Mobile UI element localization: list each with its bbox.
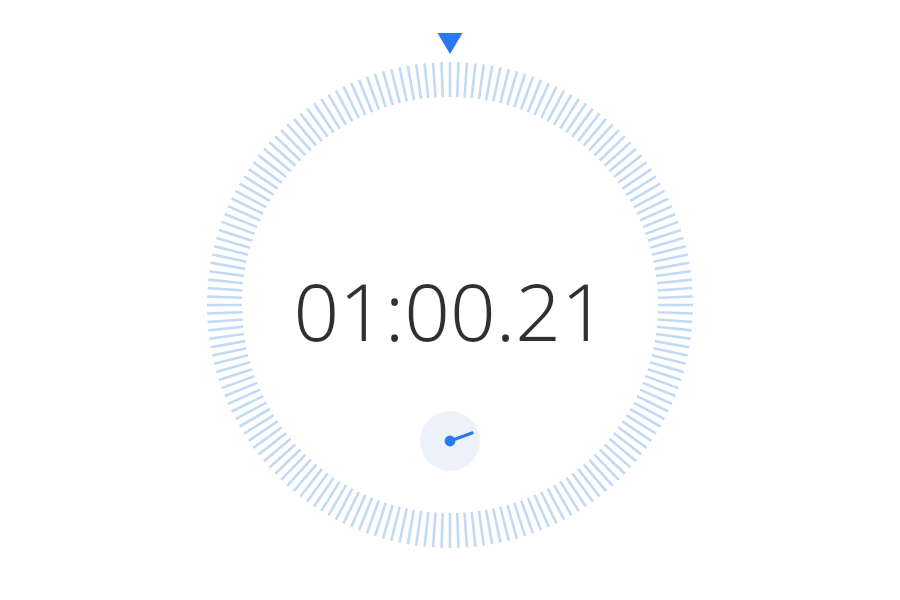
- button[interactable]: Reset timer: [420, 411, 480, 471]
- staticText: 01:00.21: [293, 255, 607, 364]
